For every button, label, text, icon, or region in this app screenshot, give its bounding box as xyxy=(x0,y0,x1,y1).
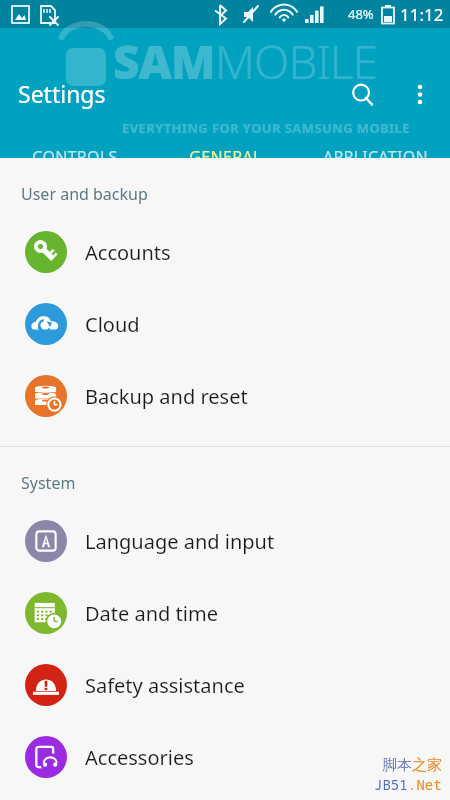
button[interactable]: More options xyxy=(398,72,442,116)
staticText: Date and time xyxy=(85,600,218,627)
button[interactable]: GENERAL xyxy=(150,146,300,168)
staticText: 之家 xyxy=(412,756,442,775)
staticText: JB51 xyxy=(374,775,408,794)
button[interactable]: Accessories xyxy=(0,721,450,793)
staticText: GENERAL xyxy=(189,146,262,168)
staticText: APPLICATION xyxy=(323,146,428,168)
button[interactable]: CONTROLS xyxy=(0,146,150,168)
staticText: Settings xyxy=(18,78,106,109)
staticText: MOBILE xyxy=(215,30,377,93)
staticText: Cloud xyxy=(85,311,140,338)
button[interactable]: Cloud xyxy=(0,288,450,360)
staticText: 脚本 xyxy=(382,756,412,775)
staticText: EVERYTHING FOR YOUR SAMSUNG MOBILE xyxy=(122,119,410,137)
staticText: Accessories xyxy=(85,744,194,771)
staticText: 48% xyxy=(348,5,374,23)
staticText: 11:12 xyxy=(400,3,444,26)
staticText: Accounts xyxy=(85,239,171,266)
button[interactable]: Backup and reset xyxy=(0,360,450,432)
staticText: CONTROLS xyxy=(32,146,118,168)
staticText: Language and input xyxy=(85,528,275,555)
staticText: Backup and reset xyxy=(85,383,248,410)
button[interactable]: APPLICATION xyxy=(300,146,450,168)
staticText: User and backup xyxy=(21,183,148,205)
staticText: System xyxy=(21,472,76,494)
button[interactable]: Accounts xyxy=(0,216,450,288)
button[interactable]: Language and input xyxy=(0,505,450,577)
button[interactable]: Search xyxy=(340,72,386,118)
staticText: .Net xyxy=(408,775,442,794)
staticText: Safety assistance xyxy=(85,672,245,699)
button[interactable]: Date and time xyxy=(0,577,450,649)
staticText: SAM xyxy=(113,30,215,93)
button[interactable]: Safety assistance xyxy=(0,649,450,721)
